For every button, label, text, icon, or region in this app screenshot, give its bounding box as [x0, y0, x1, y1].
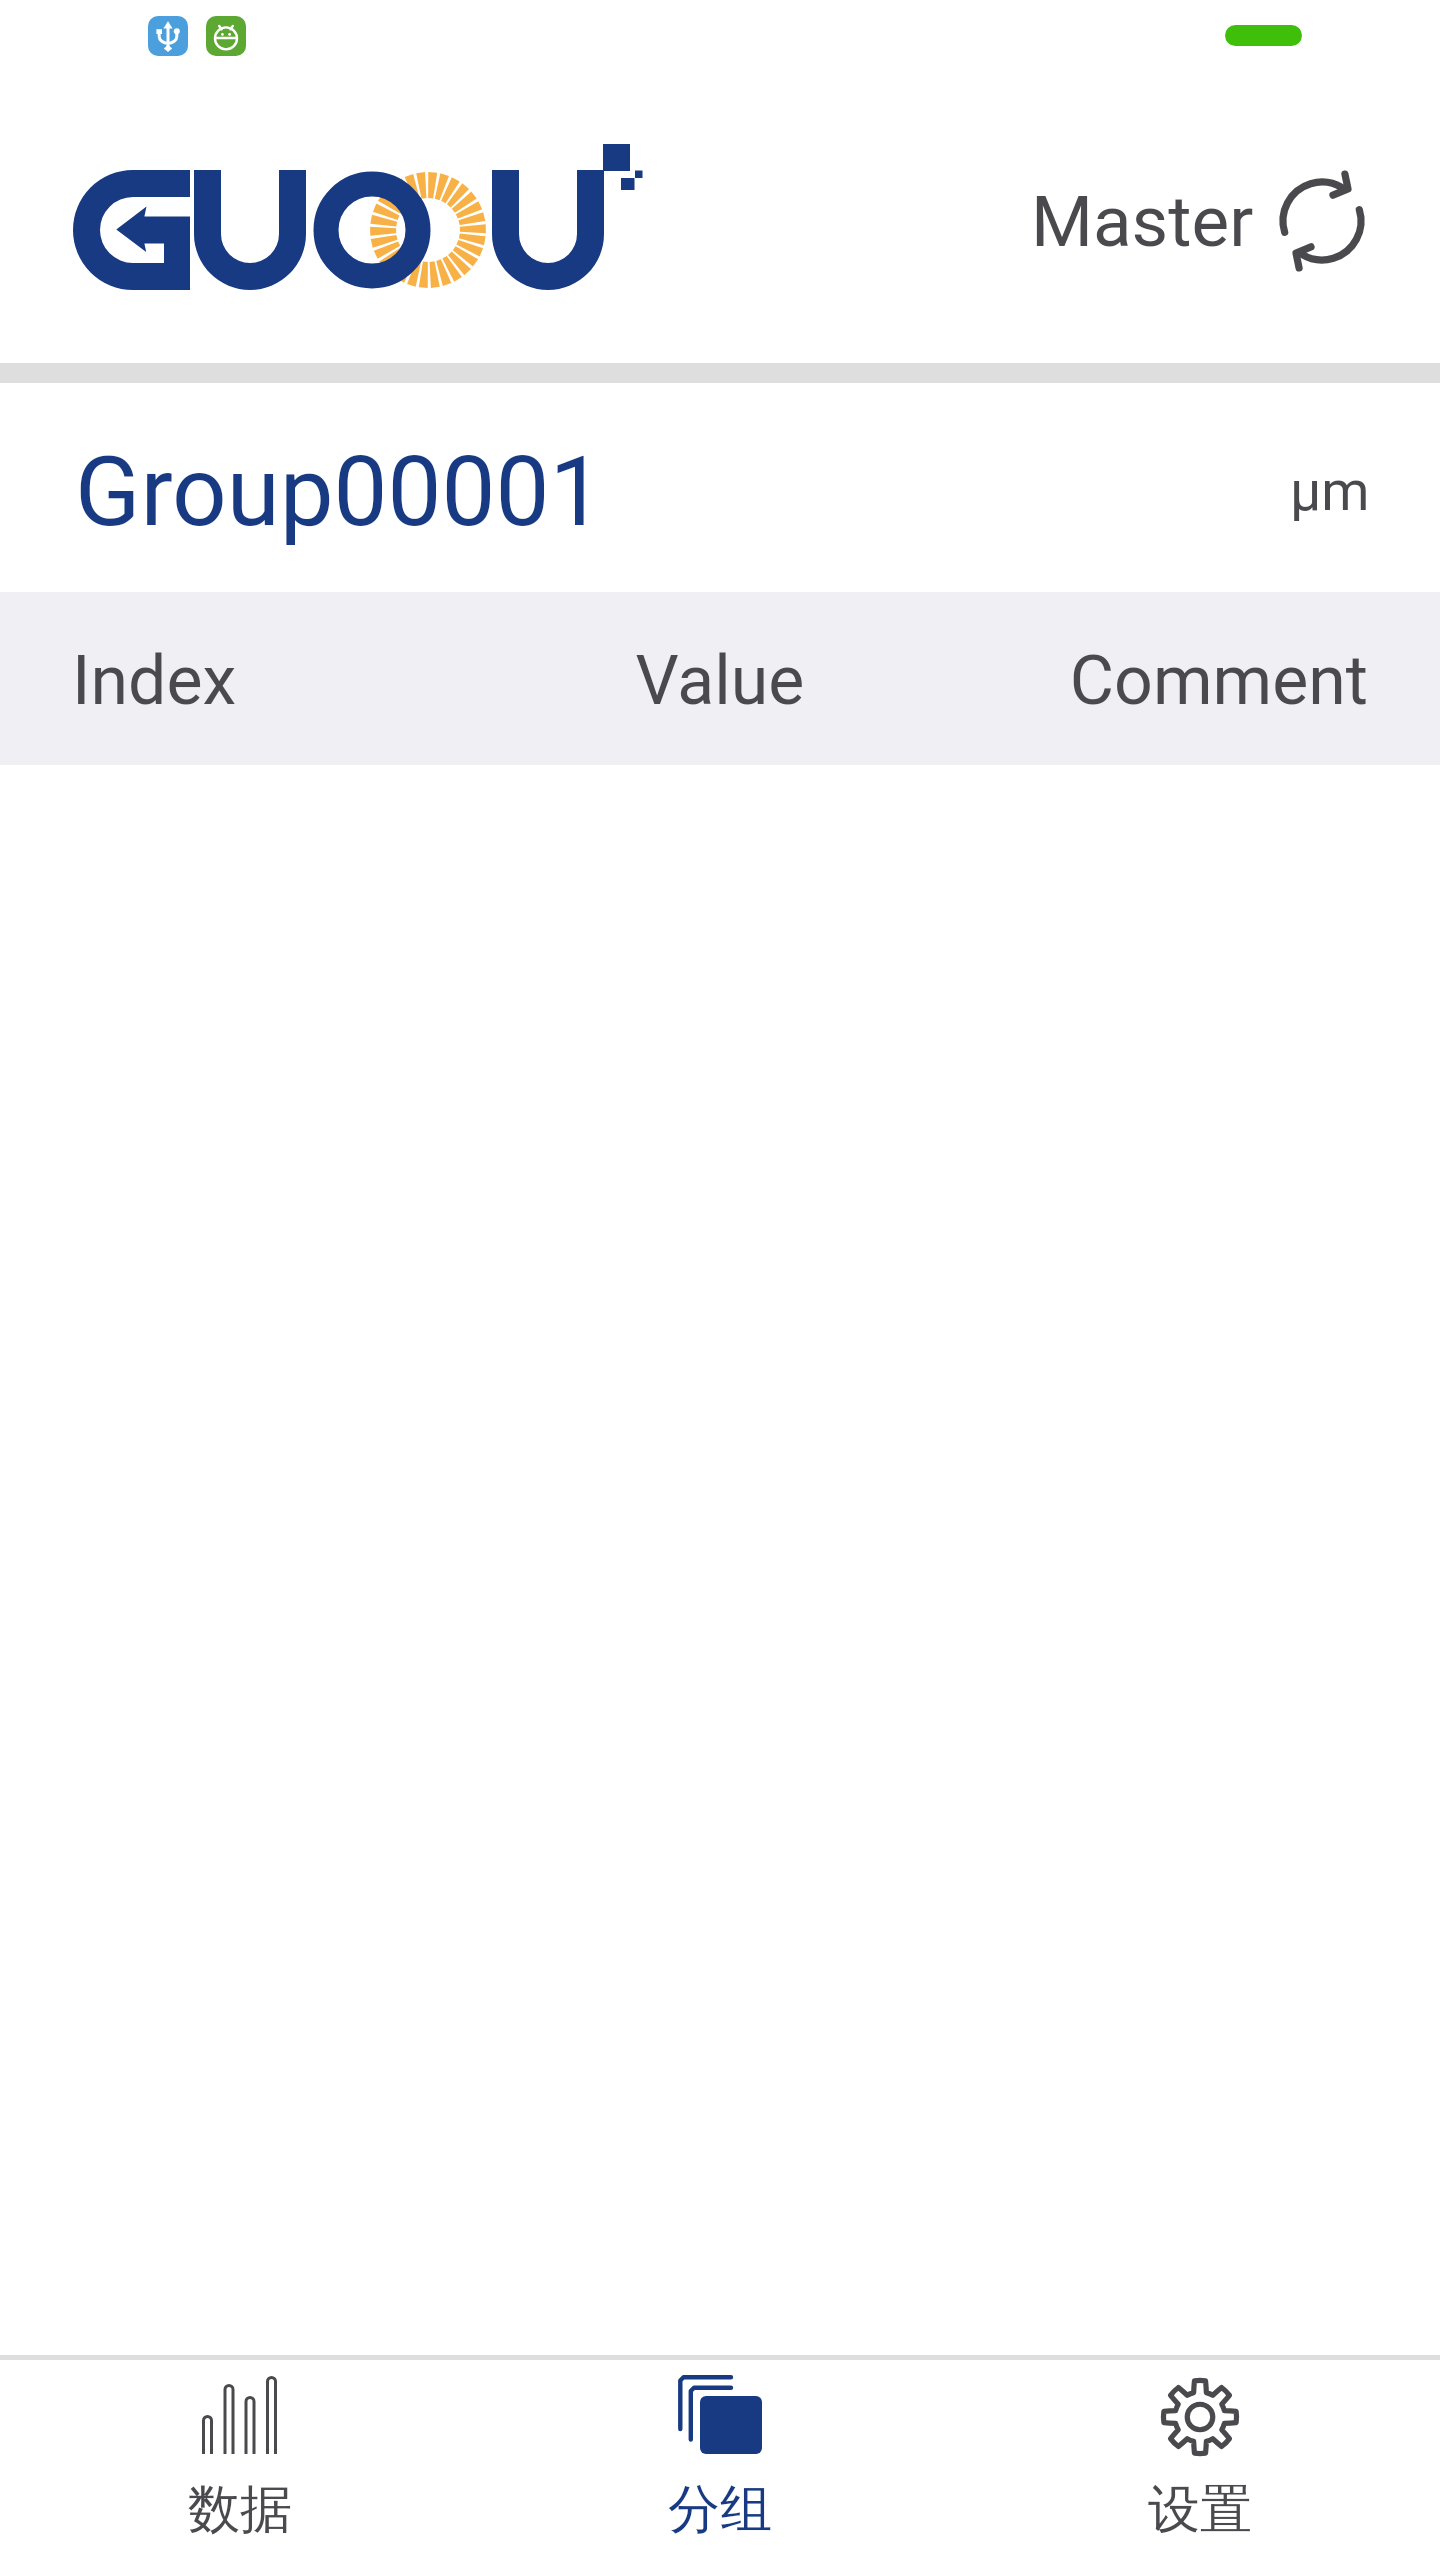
- button[interactable]: Master: [1031, 171, 1372, 271]
- staticText: Index: [72, 641, 504, 721]
- other: Sync: [1272, 171, 1372, 271]
- staticText: Comment: [936, 641, 1368, 721]
- staticText: μm: [1290, 459, 1370, 523]
- staticText: Master: [1031, 180, 1254, 263]
- staticText: Group00001: [75, 436, 604, 549]
- staticText: Value: [504, 641, 936, 721]
- button[interactable]: 设置: [960, 2360, 1440, 2560]
- staticText: 数据: [188, 2477, 292, 2543]
- staticText: 设置: [1148, 2477, 1252, 2543]
- button[interactable]: Group00001: [0, 383, 1440, 592]
- button[interactable]: 数据: [0, 2360, 480, 2560]
- staticText: 分组: [668, 2477, 772, 2543]
- button[interactable]: 分组: [480, 2360, 960, 2560]
